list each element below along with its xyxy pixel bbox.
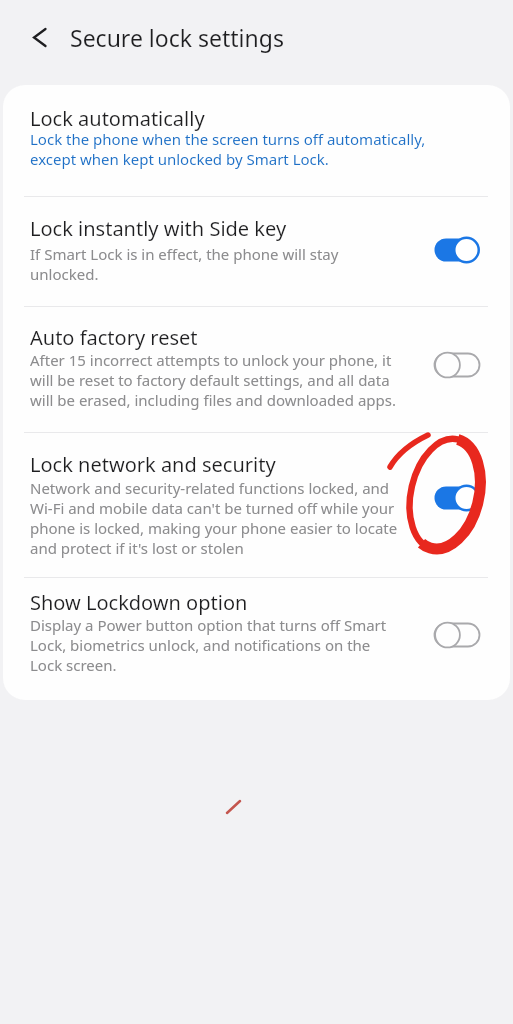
staticText: Network and security-related functions l…	[30, 478, 398, 558]
button[interactable]: Show Lockdown option	[3, 577, 510, 700]
staticText: Lock instantly with Side key	[30, 215, 287, 242]
staticText: Lock automatically	[30, 105, 205, 132]
button[interactable]	[434, 351, 480, 379]
button[interactable]: Lock network and security	[3, 432, 510, 577]
button[interactable]: Lock automatically	[3, 85, 510, 196]
staticText: Secure lock settings	[70, 22, 284, 53]
staticText: Display a Power button option that turns…	[30, 615, 387, 675]
button[interactable]: Lock instantly with Side key	[3, 196, 510, 306]
staticText: After 15 incorrect attempts to unlock yo…	[30, 350, 396, 410]
button[interactable]	[434, 621, 480, 649]
staticText: Lock the phone when the screen turns off…	[30, 129, 426, 169]
button[interactable]	[22, 25, 58, 61]
staticText: Auto factory reset	[30, 324, 198, 351]
button[interactable]	[434, 236, 480, 264]
button[interactable]	[434, 484, 480, 512]
staticText: Lock network and security	[30, 451, 276, 478]
staticText: If Smart Lock is in effect, the phone wi…	[30, 244, 339, 284]
button[interactable]: Auto factory reset	[3, 306, 510, 432]
staticText: Show Lockdown option	[30, 589, 248, 616]
